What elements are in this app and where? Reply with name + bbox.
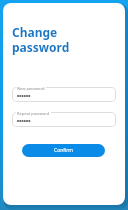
staticText: Repeat password [17,111,50,116]
button[interactable] [12,112,116,127]
button[interactable] [12,87,116,102]
staticText: Confirm [54,147,74,154]
staticText: New password [17,86,45,91]
staticText: Change password [12,24,70,55]
button[interactable]: Confirm [22,144,105,157]
